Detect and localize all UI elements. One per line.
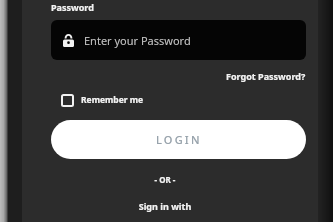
staticText: Sign in with xyxy=(22,200,308,212)
staticText: - OR - xyxy=(22,174,308,185)
button[interactable]: Forgot Password? xyxy=(226,68,318,84)
staticText: Enter your Password xyxy=(84,33,191,48)
staticText: LOGIN xyxy=(156,132,202,147)
button[interactable]: Enter your Password xyxy=(51,20,306,60)
button[interactable]: LOGIN xyxy=(51,120,306,159)
button[interactable]: Remember me xyxy=(60,92,146,108)
staticText: Password xyxy=(51,1,94,13)
staticText: Remember me xyxy=(81,94,144,106)
